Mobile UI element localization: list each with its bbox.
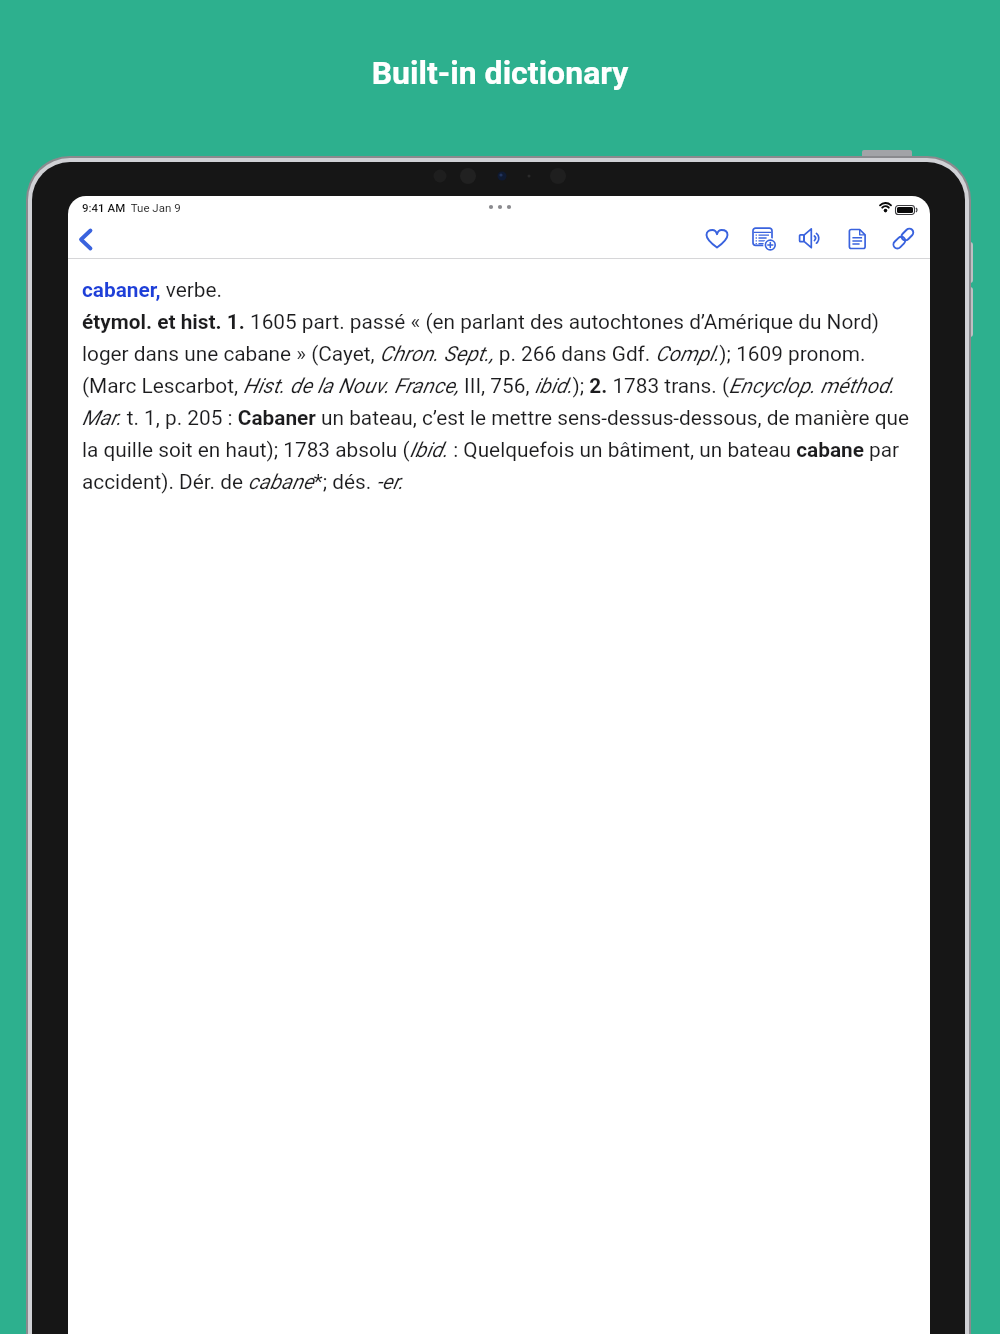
staticText: Built-in dictionary [0, 54, 1000, 92]
staticText: 9:41 AM Tue Jan 9 [82, 201, 181, 214]
button[interactable] [889, 224, 919, 254]
button[interactable] [795, 224, 825, 254]
staticText: la quille soit en haut); 1783 absolu (Ib… [82, 438, 900, 462]
button[interactable] [748, 224, 778, 254]
button[interactable] [702, 224, 732, 254]
staticText: Mar. t. 1, p. 205 : Cabaner un bateau, c… [82, 406, 910, 430]
staticText: (Marc Lescarbot, Hist. de la Nouv. Franc… [82, 374, 895, 398]
staticText: loger dans une cabane » (Cayet, Chron. S… [82, 342, 866, 366]
staticText: cabaner, verbe. [82, 278, 223, 302]
button[interactable] [842, 224, 872, 254]
button[interactable] [74, 224, 98, 248]
staticText: étymol. et hist. 1. 1605 part. passé « (… [82, 310, 880, 334]
staticText: accident). Dér. de cabane*; dés. -er. [82, 470, 404, 494]
